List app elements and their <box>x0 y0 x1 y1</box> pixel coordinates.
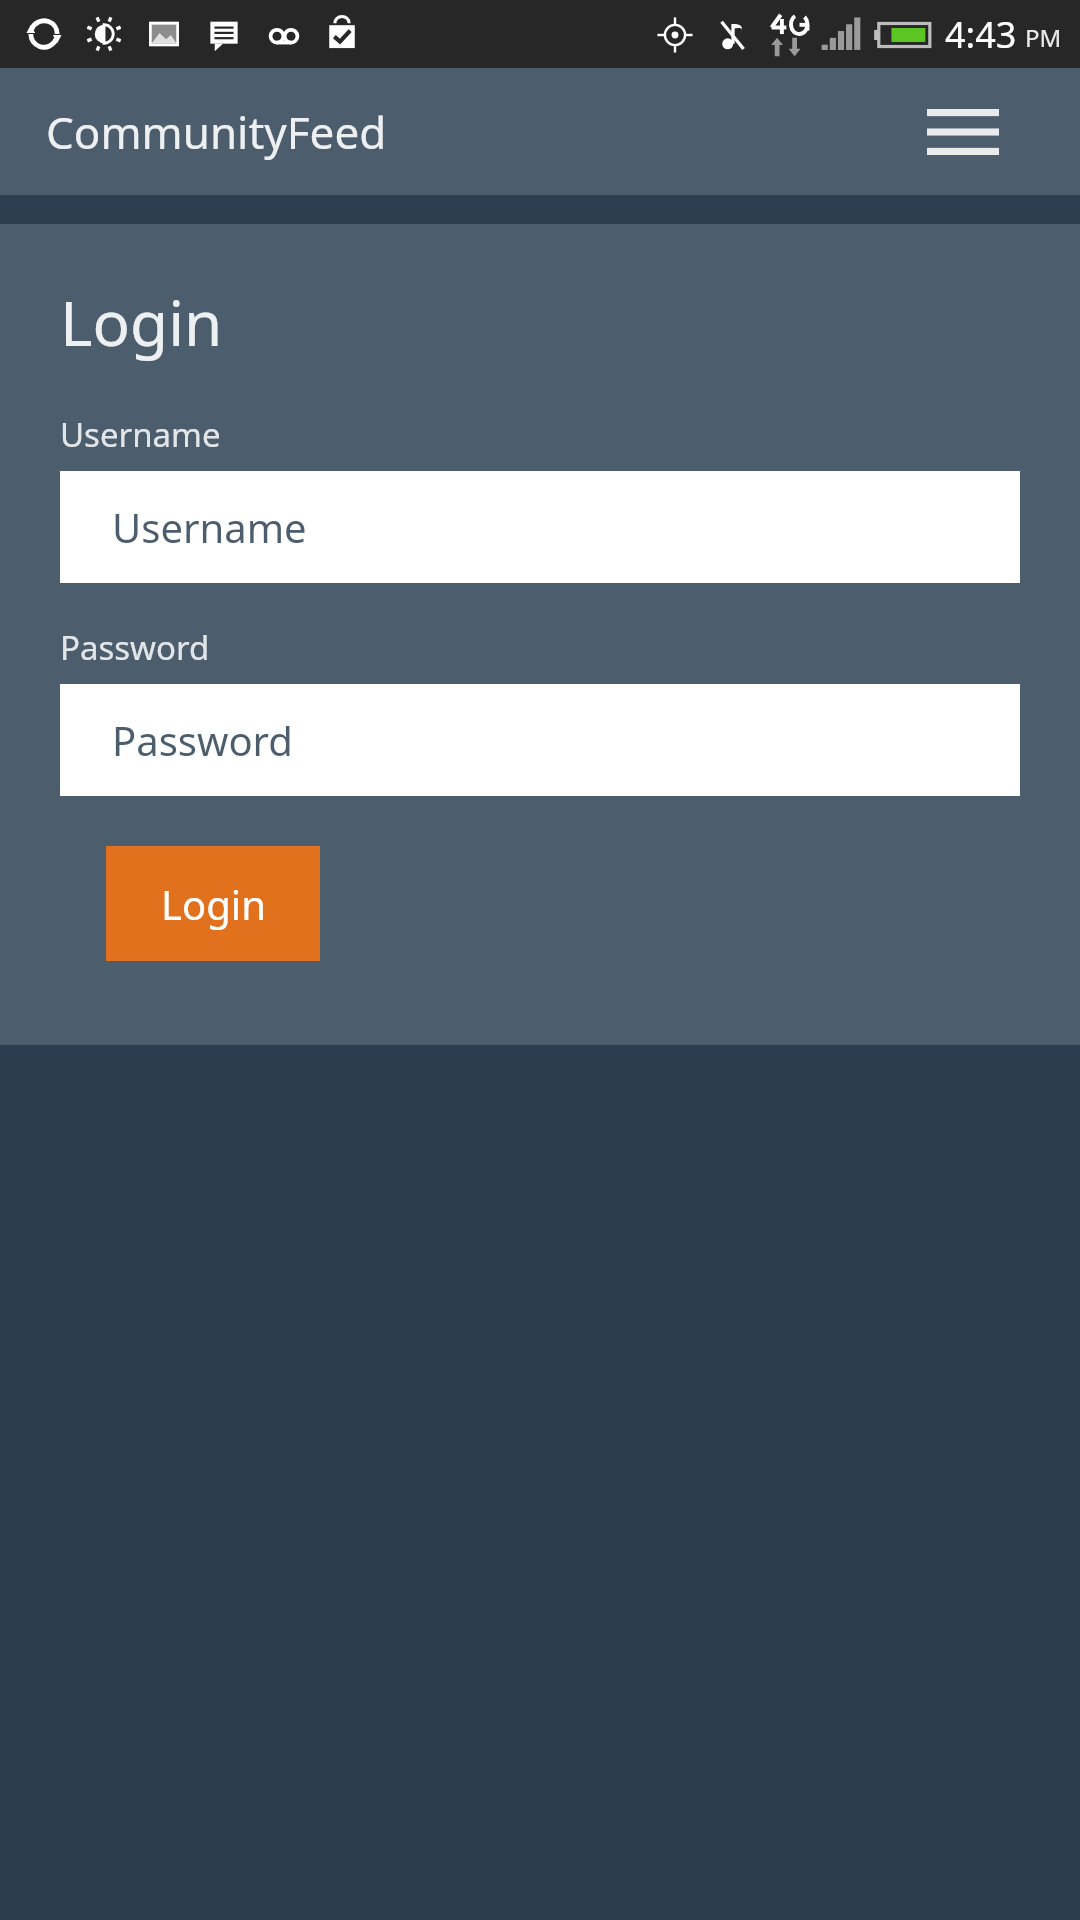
button[interactable]: Login <box>106 846 320 961</box>
staticText: Login <box>60 280 223 364</box>
staticText: Username <box>112 500 307 554</box>
staticText: 4:43 <box>945 10 1017 59</box>
staticText: PM <box>1025 21 1062 54</box>
button[interactable]: Open navigation menu <box>920 99 1006 165</box>
staticText: Username <box>60 412 221 457</box>
staticText: Password <box>60 625 210 670</box>
staticText: Password <box>112 713 293 767</box>
staticText: CommunityFeed <box>46 102 387 162</box>
staticText: Login <box>161 877 266 931</box>
button[interactable]: Username <box>60 471 1020 583</box>
button[interactable]: Password <box>60 684 1020 796</box>
